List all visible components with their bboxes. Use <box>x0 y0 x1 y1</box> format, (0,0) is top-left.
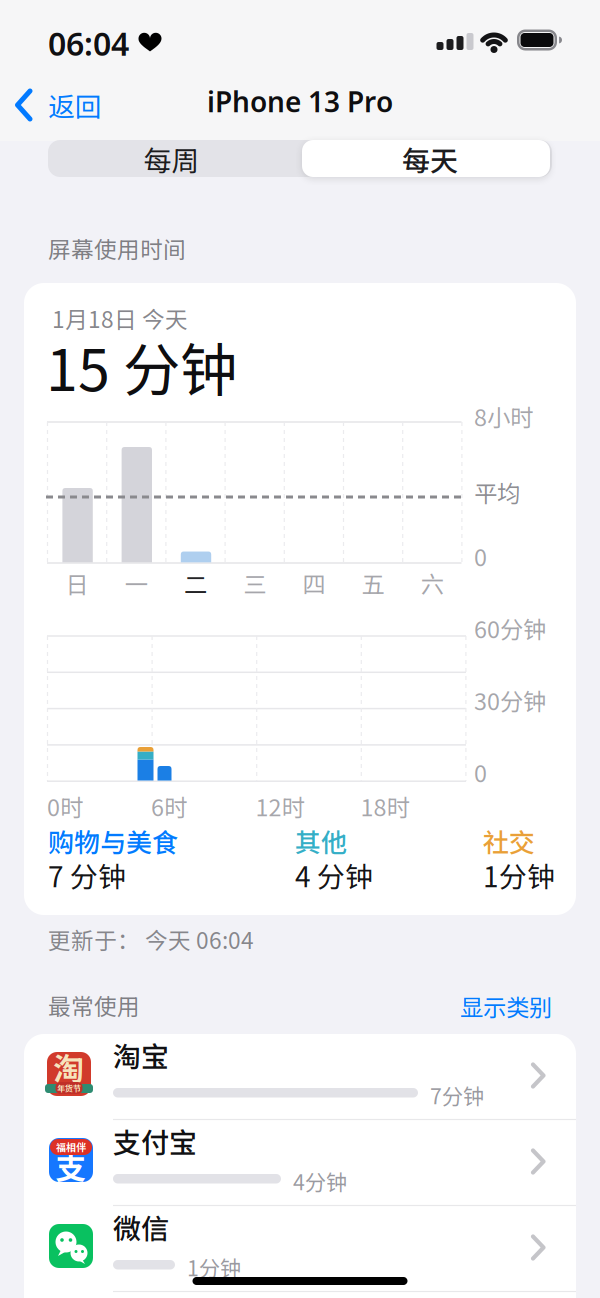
staticText: 返回 <box>48 86 102 124</box>
staticText: 微信 <box>113 1207 169 1247</box>
staticText: 8小时 <box>474 399 533 433</box>
staticText: 更新于： 今天 06:04 <box>48 923 254 955</box>
staticText: 五 <box>362 566 385 600</box>
staticText: 屏幕使用时间 <box>48 232 186 264</box>
staticText: 18时 <box>360 789 409 823</box>
staticText: 7分钟 <box>430 1080 484 1110</box>
staticText: 淘宝 <box>113 1035 169 1075</box>
staticText: 60分钟 <box>474 611 546 645</box>
staticText: 年货节 <box>57 1082 81 1094</box>
button[interactable]: 每天 <box>302 140 550 177</box>
staticText: 1分钟 <box>483 855 555 895</box>
staticText: iPhone 13 Pro <box>207 83 393 120</box>
staticText: 4 分钟 <box>295 855 373 895</box>
staticText: 06:04 <box>48 22 129 64</box>
staticText: 支 <box>55 1144 86 1188</box>
staticText: 二 <box>184 566 207 600</box>
staticText: 1分钟 <box>187 1252 241 1282</box>
staticText: 一 <box>125 566 148 600</box>
staticText: 日 <box>66 566 89 600</box>
staticText: 30分钟 <box>474 683 546 717</box>
staticText: 7 分钟 <box>48 855 126 895</box>
button[interactable]: 微信 <box>24 1206 576 1292</box>
staticText: 6时 <box>151 789 187 823</box>
staticText: 15 分钟 <box>46 324 237 407</box>
staticText: 12时 <box>255 789 304 823</box>
staticText: 购物与美食 <box>48 822 178 860</box>
staticText: 淘 <box>53 1045 84 1089</box>
button[interactable]: 返回 <box>15 85 102 125</box>
staticText: 每天 <box>402 139 458 179</box>
button[interactable]: 每周 <box>48 140 295 177</box>
staticText: 福相伴 <box>56 1140 86 1154</box>
staticText: 最常使用 <box>48 989 140 1021</box>
staticText: 社交 <box>483 822 535 860</box>
staticText: 四 <box>302 566 325 600</box>
staticText: 1月18日 今天 <box>52 302 188 334</box>
staticText: 支付宝 <box>113 1121 197 1161</box>
staticText: 每周 <box>143 139 199 179</box>
staticText: 其他 <box>295 822 347 860</box>
staticText: 4分钟 <box>293 1166 347 1196</box>
staticText: 0 <box>474 755 487 789</box>
staticText: 0 <box>474 539 487 573</box>
button[interactable]: 显示类别 <box>460 989 552 1023</box>
staticText: 平均 <box>474 475 520 509</box>
staticText: 显示类别 <box>460 989 552 1023</box>
staticText: 三 <box>243 566 266 600</box>
staticText: 0时 <box>47 789 83 823</box>
staticText: 六 <box>421 566 444 600</box>
button[interactable]: 淘 <box>24 1034 576 1120</box>
button[interactable]: 支 <box>24 1120 576 1206</box>
